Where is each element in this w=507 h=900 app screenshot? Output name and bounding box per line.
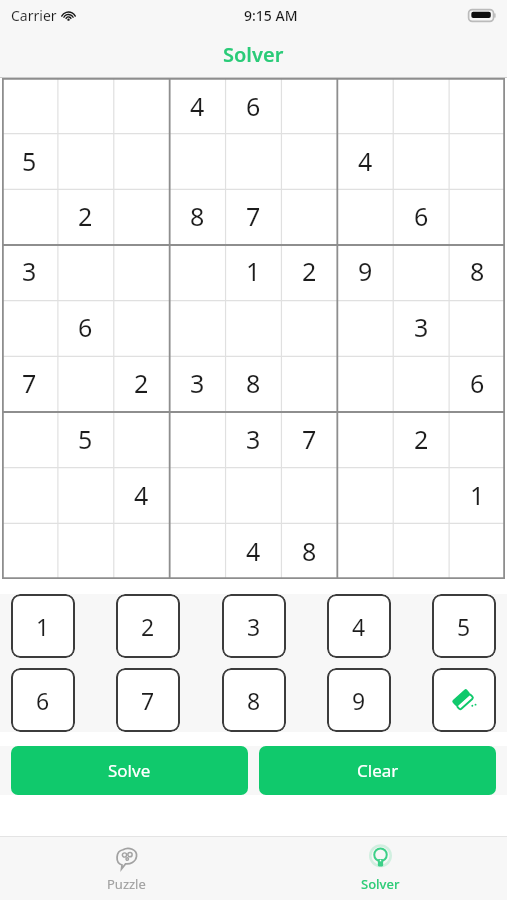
button[interactable] <box>337 188 393 243</box>
button[interactable] <box>337 523 393 579</box>
button[interactable] <box>169 467 225 523</box>
button[interactable] <box>57 243 113 299</box>
button[interactable] <box>393 243 449 299</box>
button[interactable]: Clear <box>259 746 496 795</box>
button[interactable]: 2 <box>393 411 449 467</box>
button[interactable] <box>113 188 169 243</box>
button[interactable]: 4 <box>225 523 281 579</box>
button[interactable]: 7 <box>2 355 57 411</box>
button[interactable]: 5 <box>2 133 57 188</box>
button[interactable] <box>2 78 57 133</box>
button[interactable] <box>393 133 449 188</box>
button[interactable] <box>169 411 225 467</box>
button[interactable] <box>113 299 169 355</box>
button[interactable] <box>169 299 225 355</box>
button[interactable] <box>169 523 225 579</box>
staticText: 8 <box>302 534 317 568</box>
staticText: 2 <box>134 366 149 400</box>
button[interactable]: 8 <box>169 188 225 243</box>
button[interactable]: 9 <box>337 243 393 299</box>
button[interactable] <box>281 355 337 411</box>
button[interactable]: Puzzle <box>0 837 253 900</box>
button[interactable] <box>337 78 393 133</box>
button[interactable]: 4 <box>327 594 391 658</box>
button[interactable] <box>2 188 57 243</box>
button[interactable]: 8 <box>222 668 286 732</box>
button[interactable] <box>2 411 57 467</box>
button[interactable]: 8 <box>281 523 337 579</box>
button[interactable]: 6 <box>57 299 113 355</box>
button[interactable]: 2 <box>116 594 180 658</box>
button[interactable]: 1 <box>449 467 505 523</box>
button[interactable]: 4 <box>337 133 393 188</box>
button[interactable]: 7 <box>225 188 281 243</box>
button[interactable]: 5 <box>432 594 496 658</box>
button[interactable] <box>449 188 505 243</box>
button[interactable]: Solver <box>253 837 507 900</box>
button[interactable] <box>113 243 169 299</box>
button[interactable]: 3 <box>169 355 225 411</box>
button[interactable]: 2 <box>57 188 113 243</box>
button[interactable] <box>449 133 505 188</box>
button[interactable] <box>57 78 113 133</box>
button[interactable]: 3 <box>222 594 286 658</box>
button[interactable]: 8 <box>449 243 505 299</box>
button[interactable] <box>113 133 169 188</box>
button[interactable] <box>393 78 449 133</box>
button[interactable] <box>281 78 337 133</box>
button[interactable]: 6 <box>393 188 449 243</box>
button[interactable] <box>225 133 281 188</box>
button[interactable]: 4 <box>113 467 169 523</box>
button[interactable] <box>225 467 281 523</box>
button[interactable]: 3 <box>225 411 281 467</box>
button[interactable]: 5 <box>57 411 113 467</box>
button[interactable]: 1 <box>11 594 75 658</box>
button[interactable] <box>449 78 505 133</box>
button[interactable] <box>281 188 337 243</box>
button[interactable] <box>449 411 505 467</box>
button[interactable] <box>2 523 57 579</box>
button[interactable] <box>2 467 57 523</box>
button[interactable] <box>57 133 113 188</box>
button[interactable] <box>113 411 169 467</box>
staticText: 5 <box>457 611 471 642</box>
button[interactable] <box>57 467 113 523</box>
button[interactable]: 3 <box>393 299 449 355</box>
button[interactable] <box>449 299 505 355</box>
button[interactable] <box>337 467 393 523</box>
button[interactable] <box>337 299 393 355</box>
button[interactable]: 2 <box>281 243 337 299</box>
button[interactable] <box>281 467 337 523</box>
button[interactable] <box>281 299 337 355</box>
button[interactable]: 6 <box>225 78 281 133</box>
button[interactable]: 7 <box>281 411 337 467</box>
button[interactable]: Solve <box>11 746 248 795</box>
button[interactable]: Erase <box>432 668 496 732</box>
button[interactable] <box>337 355 393 411</box>
button[interactable]: 3 <box>2 243 57 299</box>
button[interactable] <box>113 78 169 133</box>
button[interactable] <box>449 523 505 579</box>
button[interactable] <box>337 411 393 467</box>
button[interactable]: 2 <box>113 355 169 411</box>
button[interactable] <box>2 299 57 355</box>
button[interactable] <box>393 355 449 411</box>
button[interactable]: 7 <box>116 668 180 732</box>
button[interactable]: 4 <box>169 78 225 133</box>
staticText: 6 <box>414 199 429 233</box>
button[interactable]: 6 <box>449 355 505 411</box>
staticText: 3 <box>190 366 205 400</box>
button[interactable] <box>57 523 113 579</box>
button[interactable] <box>169 133 225 188</box>
button[interactable]: 8 <box>225 355 281 411</box>
button[interactable] <box>113 523 169 579</box>
button[interactable]: 9 <box>327 668 391 732</box>
button[interactable] <box>393 523 449 579</box>
button[interactable] <box>169 243 225 299</box>
button[interactable]: 1 <box>225 243 281 299</box>
button[interactable]: 6 <box>11 668 75 732</box>
button[interactable] <box>281 133 337 188</box>
button[interactable] <box>225 299 281 355</box>
button[interactable] <box>393 467 449 523</box>
button[interactable] <box>57 355 113 411</box>
